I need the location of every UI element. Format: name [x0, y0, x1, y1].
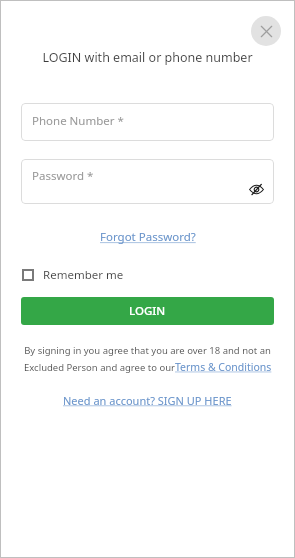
button[interactable]: Remember me: [21, 265, 125, 285]
button[interactable]: LOGIN: [21, 297, 274, 325]
staticText: Password *: [32, 168, 94, 184]
staticText: Phone Number *: [32, 113, 124, 129]
staticText: Excluded Person and agree to our: [24, 361, 175, 374]
button[interactable]: Need an account? SIGN UP HERE: [59, 391, 236, 410]
button[interactable]: Show password: [245, 178, 267, 200]
button[interactable]: Forgot Password?: [96, 227, 200, 247]
button[interactable]: Phone Number *: [21, 103, 274, 141]
button[interactable]: Password *: [21, 159, 274, 204]
staticText: LOGIN: [129, 303, 166, 319]
staticText: By signing in you agree that you are ove…: [24, 344, 271, 357]
staticText: LOGIN with email or phone number: [42, 49, 253, 66]
button[interactable]: Terms & Conditions: [175, 360, 272, 374]
staticText: Remember me: [43, 267, 124, 283]
button[interactable]: Close: [251, 16, 281, 46]
